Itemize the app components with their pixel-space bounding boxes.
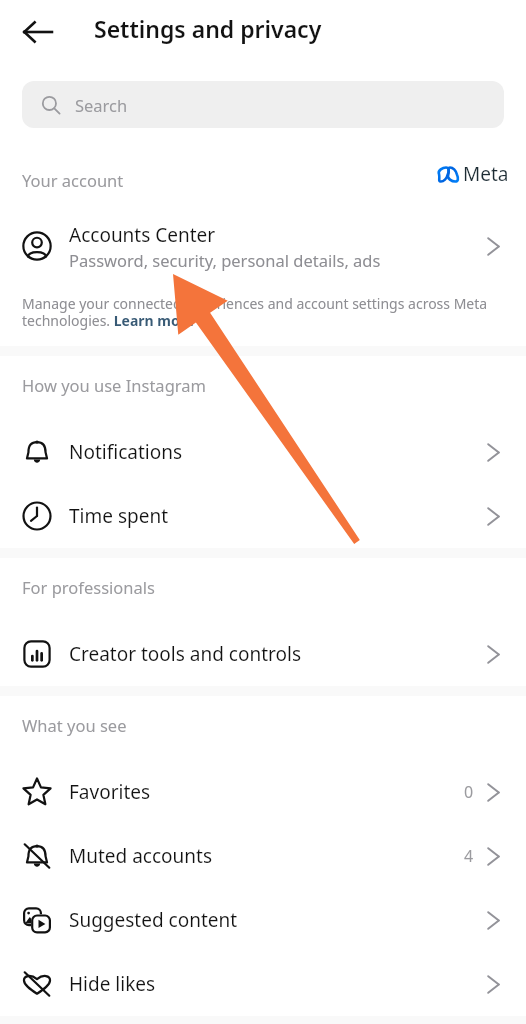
button[interactable]: Search <box>22 81 504 128</box>
button[interactable]: Back <box>14 8 61 55</box>
button[interactable]: Time spent <box>0 484 526 548</box>
staticText: Accounts Center <box>69 222 216 248</box>
staticText: Meta <box>463 161 509 187</box>
staticText: Notifications <box>69 439 183 465</box>
staticText: What you see <box>22 714 127 736</box>
staticText: How you use Instagram <box>22 374 206 396</box>
button[interactable]: Muted accounts <box>0 824 526 888</box>
button[interactable]: Notifications <box>0 420 526 484</box>
staticText: Hide likes <box>69 971 156 997</box>
staticText: Creator tools and controls <box>69 641 301 667</box>
staticText: 0 <box>464 781 474 803</box>
staticText: 4 <box>464 845 474 867</box>
staticText: Password, security, personal details, ad… <box>69 249 381 271</box>
staticText: Your account <box>22 169 124 191</box>
button[interactable]: Favorites <box>0 760 526 824</box>
button[interactable]: Creator tools and controls <box>0 622 526 686</box>
staticText: For professionals <box>22 576 155 598</box>
button[interactable]: Hide likes <box>0 952 526 1016</box>
staticText: Settings and privacy <box>94 13 322 44</box>
staticText: Favorites <box>69 779 151 805</box>
staticText: Time spent <box>69 503 168 529</box>
staticText: Suggested content <box>69 907 238 933</box>
button[interactable]: Suggested content <box>0 888 526 952</box>
staticText: Muted accounts <box>69 843 213 869</box>
staticText: Manage your connected experiences and ac… <box>22 294 500 330</box>
button[interactable]: Accounts Center <box>0 214 526 278</box>
staticText: Search <box>75 94 128 116</box>
